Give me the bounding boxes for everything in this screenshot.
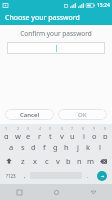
- button[interactable]: Choose your password: [0, 11, 112, 25]
- button[interactable]: ,: [20, 169, 29, 182]
- staticText: 3: [27, 126, 30, 131]
- staticText: y: [60, 131, 64, 139]
- staticText: x: [33, 156, 37, 166]
- staticText: 15:24: [97, 2, 110, 9]
- staticText: p: [103, 131, 108, 139]
- staticText: f: [43, 142, 46, 152]
- button[interactable]: ?123: [1, 169, 20, 182]
- staticText: u: [70, 131, 75, 139]
- staticText: k: [86, 142, 91, 152]
- staticText: e: [26, 131, 31, 139]
- button[interactable]: a: [6, 141, 17, 153]
- staticText: n: [77, 156, 82, 166]
- staticText: 1: [5, 126, 8, 131]
- staticText: 5: [49, 126, 52, 131]
- button[interactable]: n: [74, 155, 85, 167]
- button[interactable]: g: [50, 141, 61, 153]
- staticText: a: [9, 142, 14, 152]
- staticText: 4: [39, 126, 42, 131]
- button[interactable]: j: [72, 141, 83, 153]
- button[interactable]: k: [83, 141, 94, 153]
- button[interactable]: Home: [38, 184, 75, 200]
- button[interactable]: Back: [75, 184, 112, 200]
- staticText: 6: [61, 126, 64, 131]
- staticText: z: [21, 156, 25, 166]
- button[interactable]: v: [52, 155, 63, 167]
- staticText: g: [53, 142, 58, 152]
- button[interactable]: Cancel: [5, 109, 54, 120]
- staticText: w: [15, 131, 21, 139]
- button[interactable]: c: [41, 155, 52, 167]
- button[interactable]: OK: [58, 109, 107, 120]
- staticText: ?123: [6, 173, 16, 179]
- staticText: Confirm your password: [20, 29, 92, 38]
- staticText: s: [21, 142, 25, 152]
- staticText: ,: [24, 172, 26, 180]
- staticText: d: [31, 142, 36, 152]
- staticText: r: [38, 131, 42, 139]
- button[interactable]: 5: [45, 126, 56, 139]
- button[interactable]: Enter: [97, 171, 107, 181]
- staticText: j: [77, 142, 79, 152]
- staticText: m: [87, 156, 95, 166]
- staticText: t: [49, 131, 52, 139]
- staticText: l: [99, 142, 101, 152]
- staticText: OK: [78, 111, 87, 119]
- button[interactable]: 9: [89, 126, 100, 139]
- staticText: 8: [82, 126, 85, 131]
- button[interactable]: b: [63, 155, 74, 167]
- staticText: v: [56, 156, 60, 166]
- button[interactable]: .: [83, 169, 92, 182]
- button[interactable]: f: [39, 141, 50, 153]
- button[interactable]: Recent apps: [0, 184, 38, 200]
- staticText: h: [64, 142, 69, 152]
- staticText: 2: [17, 126, 20, 131]
- staticText: b: [66, 156, 71, 166]
- button[interactable]: d: [28, 141, 39, 153]
- button[interactable]: l: [94, 141, 105, 153]
- staticText: Cancel: [20, 111, 40, 119]
- button[interactable]: h: [61, 141, 72, 153]
- button[interactable]: 3: [23, 126, 34, 139]
- button[interactable]: 6: [56, 126, 67, 139]
- staticText: 7: [71, 126, 74, 131]
- button[interactable]: [7, 42, 105, 54]
- staticText: q: [4, 131, 9, 139]
- button[interactable]: x: [29, 155, 41, 167]
- staticText: 9: [93, 126, 96, 131]
- button[interactable]: Shift: [1, 155, 17, 167]
- button[interactable]: 1: [1, 126, 12, 139]
- staticText: 0: [104, 126, 107, 131]
- button[interactable]: Backspace: [96, 155, 111, 167]
- button[interactable]: 0: [100, 126, 111, 139]
- button[interactable]: 7: [67, 126, 78, 139]
- button[interactable]: s: [17, 141, 28, 153]
- button[interactable]: 8: [78, 126, 89, 139]
- button[interactable]: z: [17, 155, 29, 167]
- button[interactable]: 4: [34, 126, 45, 139]
- button[interactable]: m: [85, 155, 96, 167]
- staticText: o: [92, 131, 97, 139]
- staticText: c: [45, 156, 49, 166]
- staticText: .: [87, 172, 89, 180]
- button[interactable]: 2: [12, 126, 23, 139]
- staticText: Choose your password: [5, 13, 80, 23]
- staticText: i: [83, 131, 85, 139]
